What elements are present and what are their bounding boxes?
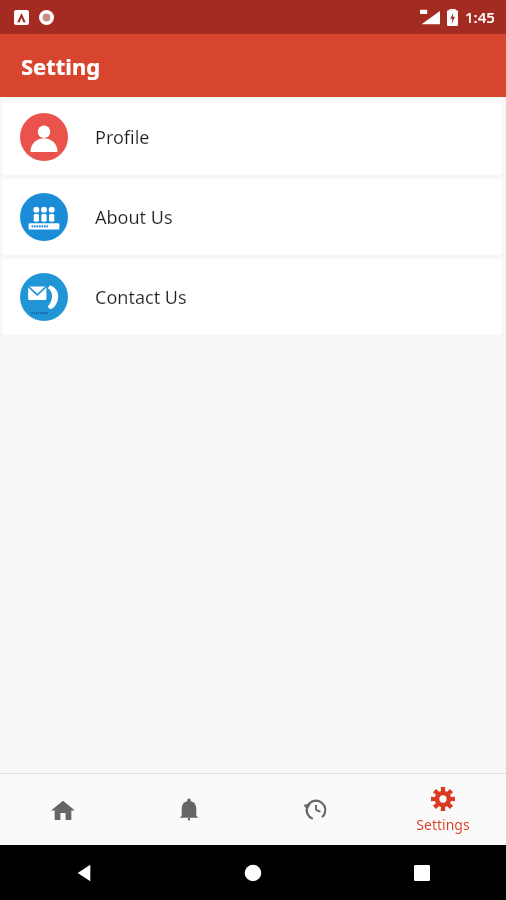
staticText: About Us xyxy=(95,205,173,230)
button[interactable]: About Us xyxy=(2,179,502,255)
button[interactable]: Settings xyxy=(379,774,506,845)
button[interactable]: History xyxy=(252,774,379,845)
staticText: Profile xyxy=(95,125,150,150)
staticText: Settings xyxy=(416,815,470,834)
staticText: Contact Us xyxy=(95,285,187,310)
button[interactable]: Notifications xyxy=(126,774,252,845)
staticText: Setting xyxy=(21,51,101,81)
button[interactable]: Profile xyxy=(2,99,502,175)
staticText: 1:45 xyxy=(465,7,495,27)
button[interactable]: Home xyxy=(0,774,126,845)
button[interactable]: Contact Us xyxy=(2,259,502,335)
